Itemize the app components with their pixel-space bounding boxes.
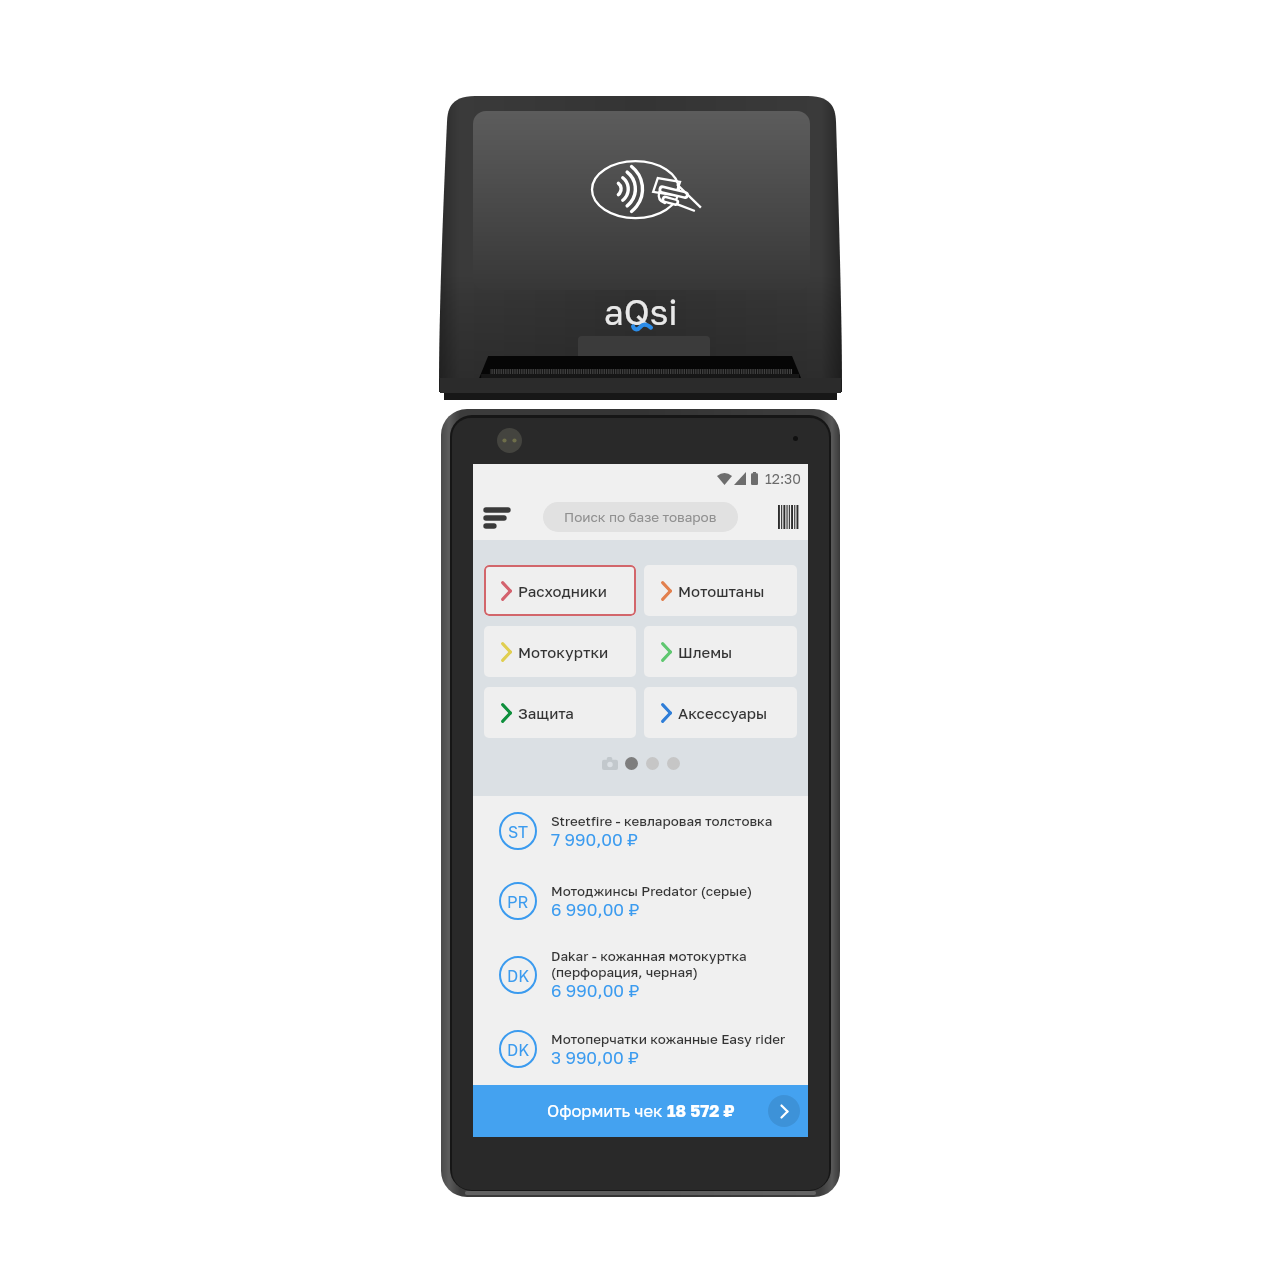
button[interactable]: DK bbox=[473, 936, 808, 1013]
button[interactable]: ST bbox=[473, 796, 808, 866]
staticText: (перфорация, черная) bbox=[551, 964, 698, 980]
staticText: 6 990,00 ₽ bbox=[551, 899, 640, 920]
staticText: PR bbox=[507, 892, 529, 911]
button[interactable]: Take photo bbox=[602, 757, 618, 770]
staticText: 18 572 ₽ bbox=[667, 1101, 735, 1121]
staticText: DK bbox=[507, 1040, 530, 1059]
staticText: Оформить чек bbox=[547, 1101, 667, 1121]
staticText: 3 990,00 ₽ bbox=[551, 1047, 640, 1068]
staticText: aQsi bbox=[604, 291, 678, 331]
staticText: Мотоперчатки кожанные Easy rider bbox=[551, 1031, 786, 1047]
button[interactable]: Proceed bbox=[768, 1095, 800, 1127]
staticText: 12:30 bbox=[765, 470, 801, 487]
button[interactable]: Мотоштаны bbox=[644, 565, 797, 616]
button[interactable]: Аксессуары bbox=[644, 687, 797, 738]
button[interactable]: Menu bbox=[483, 501, 509, 533]
staticText: 6 990,00 ₽ bbox=[551, 980, 640, 1001]
staticText: ST bbox=[508, 822, 529, 841]
button[interactable]: Расходники bbox=[484, 565, 636, 616]
staticText: Защита bbox=[518, 704, 574, 722]
button[interactable]: PR bbox=[473, 866, 808, 936]
button[interactable]: Page 2 bbox=[646, 757, 659, 770]
button[interactable]: Оформить чек bbox=[473, 1085, 808, 1137]
button[interactable]: Мотокуртки bbox=[484, 626, 636, 677]
button[interactable]: Поиск по базе товаров bbox=[543, 502, 738, 532]
button[interactable]: Шлемы bbox=[644, 626, 797, 677]
button[interactable]: Scan barcode bbox=[778, 501, 797, 533]
staticText: Dakar - кожанная мотокуртка bbox=[551, 948, 747, 964]
staticText: 7 990,00 ₽ bbox=[551, 829, 639, 850]
staticText: Аксессуары bbox=[678, 704, 768, 722]
button[interactable]: DK bbox=[473, 1013, 808, 1085]
staticText: Поиск по базе товаров bbox=[564, 509, 717, 525]
staticText: DK bbox=[507, 966, 530, 985]
button[interactable]: Page 3 bbox=[667, 757, 680, 770]
staticText: Мотоджинсы Predator (серые) bbox=[551, 883, 753, 899]
button[interactable]: Page 1 bbox=[625, 757, 638, 770]
staticText: Шлемы bbox=[678, 643, 733, 661]
staticText: Расходники bbox=[518, 582, 607, 600]
staticText: Мотоштаны bbox=[678, 582, 765, 600]
button[interactable]: Защита bbox=[484, 687, 636, 738]
staticText: Streetfire - кевларовая толстовка bbox=[551, 813, 773, 829]
staticText: Мотокуртки bbox=[518, 643, 609, 661]
